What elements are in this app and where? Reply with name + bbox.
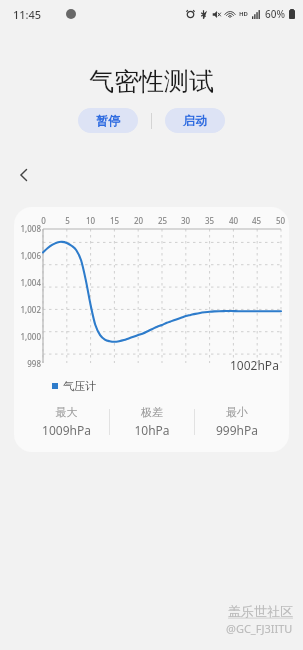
staticText: 35 xyxy=(204,215,215,226)
button[interactable]: Back xyxy=(8,159,40,191)
staticText: 60% xyxy=(265,7,285,21)
staticText: 盖乐世社区 xyxy=(228,603,293,619)
staticText: 气压计 xyxy=(63,379,96,393)
button[interactable]: 最大 xyxy=(24,405,109,438)
staticText: 5 xyxy=(62,215,73,226)
button[interactable]: 启动 xyxy=(165,108,225,133)
staticText: 1009hPa xyxy=(24,422,109,438)
staticText: 最小 xyxy=(195,405,279,419)
button[interactable]: 最小 xyxy=(195,405,279,438)
button[interactable]: 极差 xyxy=(110,405,194,438)
staticText: 10hPa xyxy=(110,422,194,438)
staticText: 20 xyxy=(133,215,144,226)
staticText: 45 xyxy=(251,215,262,226)
staticText: HD xyxy=(239,10,248,18)
staticText: 998 xyxy=(14,358,41,369)
staticText: 1,008 xyxy=(14,223,41,234)
staticText: 暂停 xyxy=(96,113,120,128)
staticText: 15 xyxy=(109,215,120,226)
staticText: 999hPa xyxy=(195,422,279,438)
staticText: 50 xyxy=(275,215,286,226)
staticText: 40 xyxy=(228,215,239,226)
staticText: 1,004 xyxy=(14,277,41,288)
staticText: 启动 xyxy=(183,113,207,128)
staticText: 0 xyxy=(38,215,49,226)
staticText: 1002hPa xyxy=(230,357,279,373)
staticText: @GC_FJ3IITU xyxy=(226,621,293,636)
staticText: 1,006 xyxy=(14,250,41,261)
staticText: 气密性测试 xyxy=(0,66,303,97)
staticText: 30 xyxy=(180,215,191,226)
staticText: 最大 xyxy=(24,405,109,419)
staticText: 极差 xyxy=(110,405,194,419)
staticText: 11:45 xyxy=(13,7,42,22)
staticText: 1,002 xyxy=(14,304,41,315)
button[interactable]: 0 xyxy=(14,207,289,452)
staticText: 25 xyxy=(157,215,168,226)
button[interactable]: 暂停 xyxy=(78,108,138,133)
staticText: 1,000 xyxy=(14,331,41,342)
staticText: 10 xyxy=(85,215,96,226)
